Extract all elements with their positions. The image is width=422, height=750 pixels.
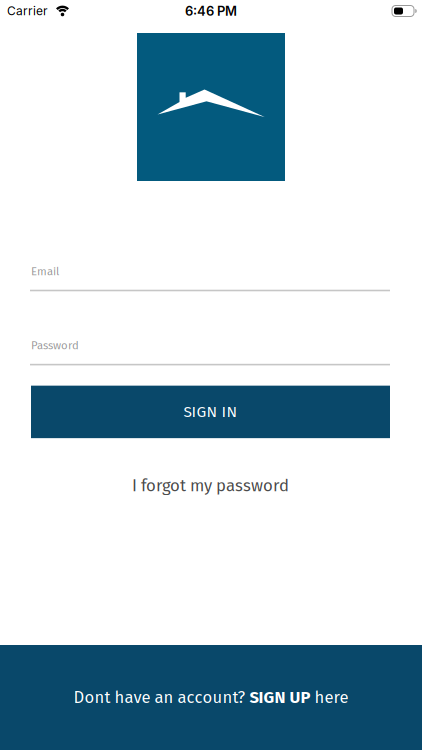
button[interactable]: Password	[30, 336, 390, 366]
button[interactable]: SIGN IN	[31, 386, 390, 438]
staticText: I forgot my password	[132, 476, 289, 496]
button[interactable]: Email	[30, 262, 390, 292]
staticText: SIGN IN	[183, 403, 237, 421]
staticText: Password	[31, 339, 79, 352]
staticText: Email	[31, 265, 59, 278]
staticText: Carrier	[7, 4, 48, 18]
button[interactable]: Dont have an account? SIGN UP here	[0, 645, 422, 750]
staticText: 6:46 PM	[185, 3, 237, 19]
button[interactable]: I forgot my password	[132, 476, 289, 496]
staticText: Dont have an account? SIGN UP here	[73, 687, 348, 707]
